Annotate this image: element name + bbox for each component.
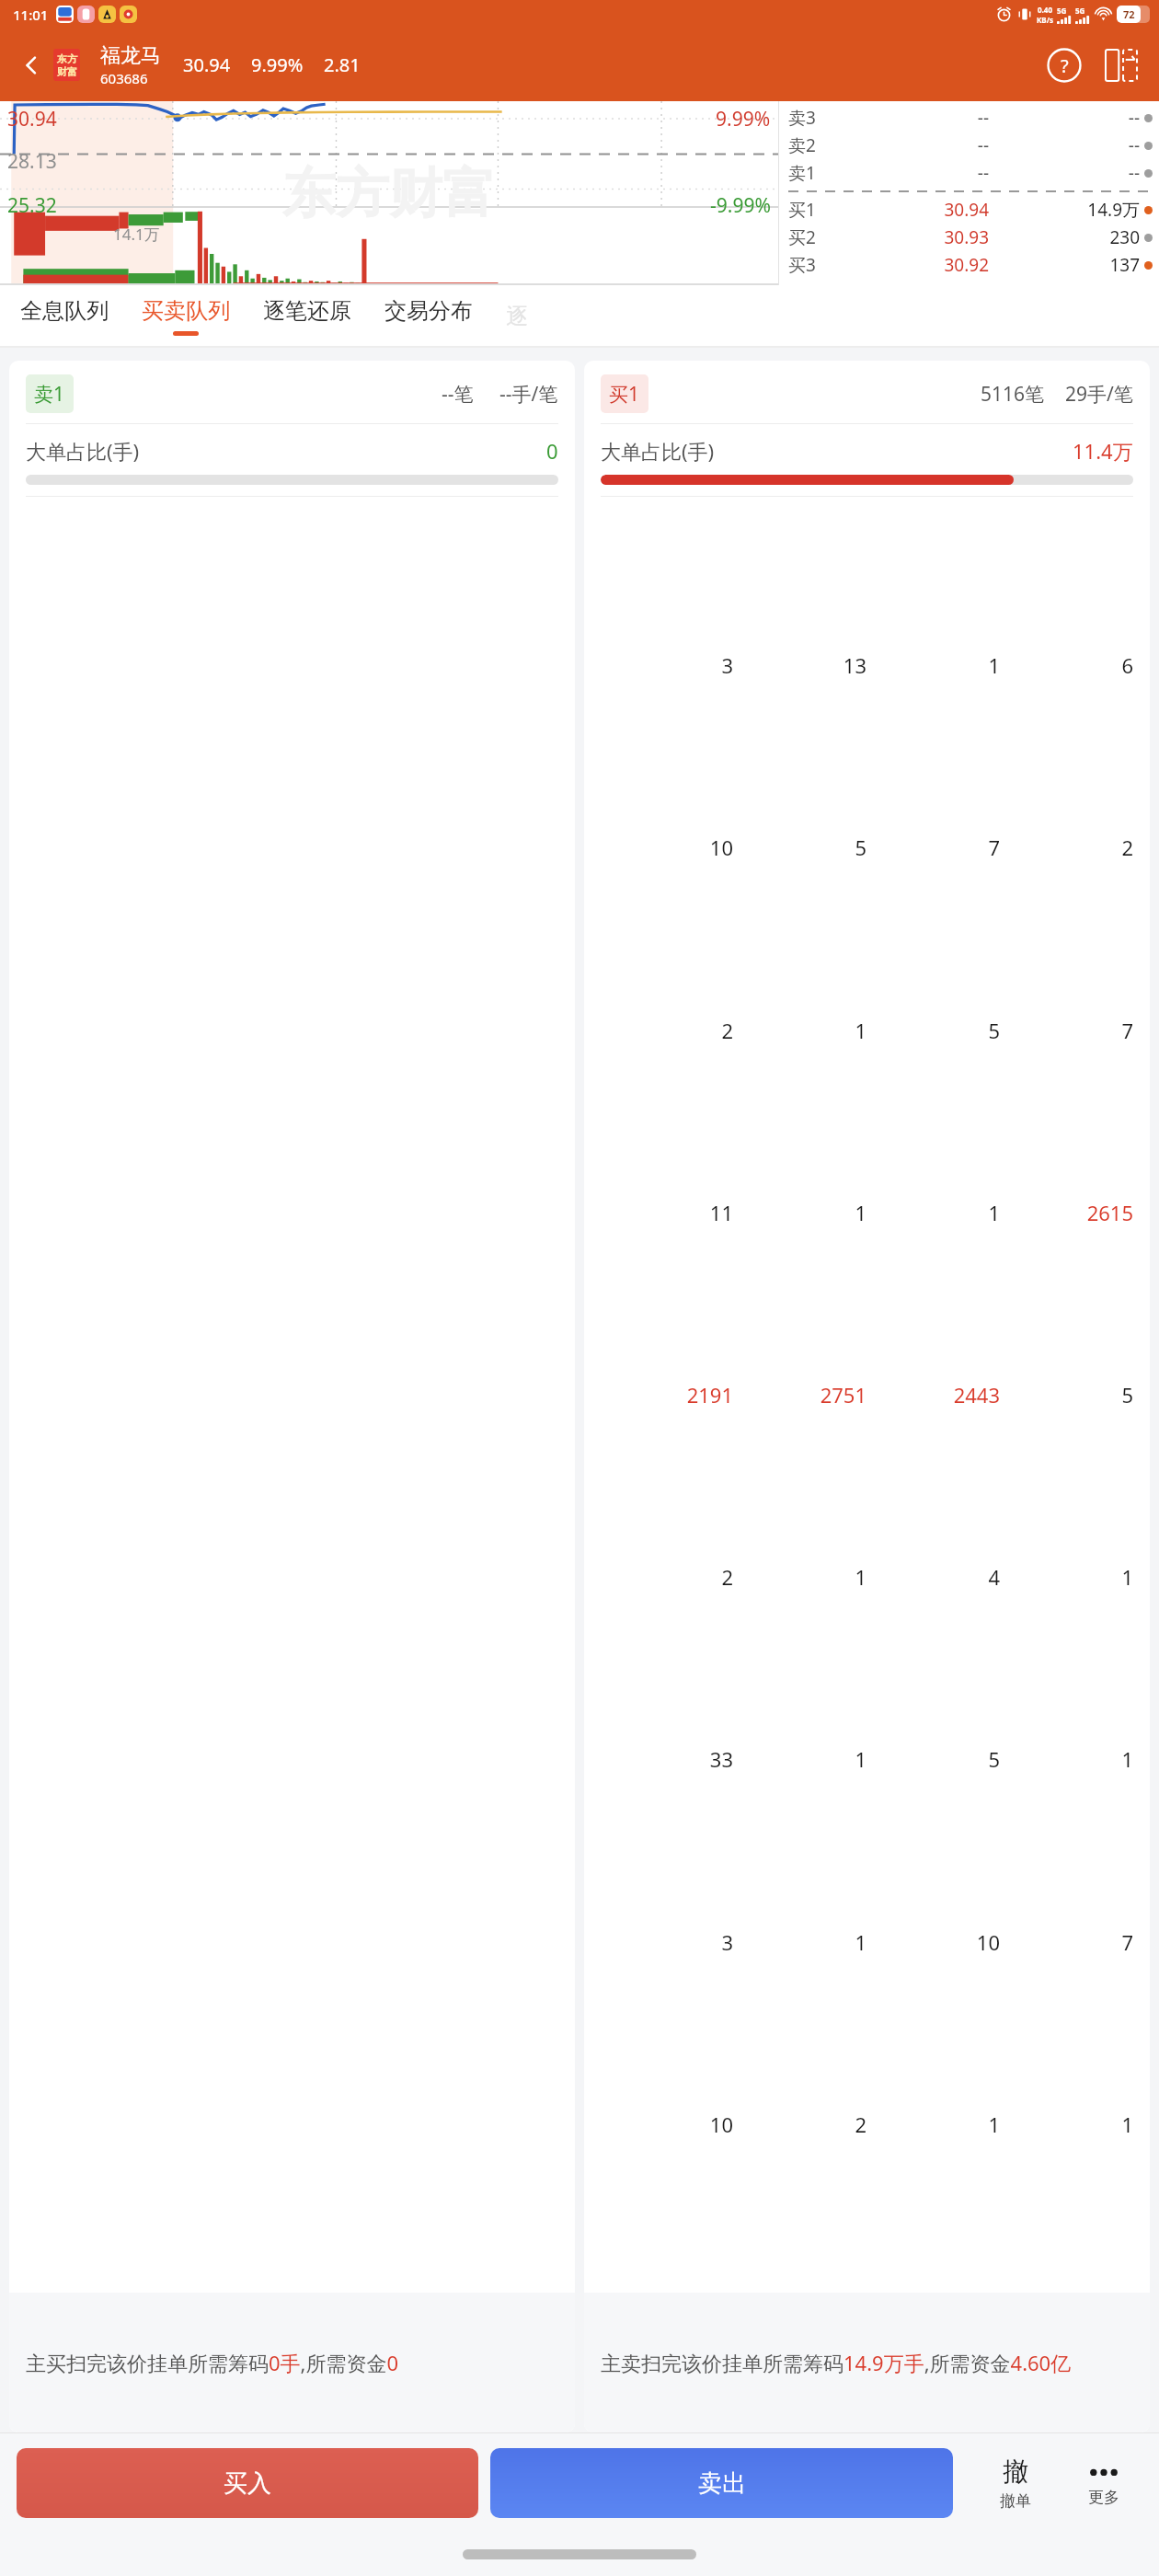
- staticText: KB/s: [1037, 15, 1053, 25]
- button[interactable]: 全息队列: [20, 292, 109, 341]
- staticText: 9.99%: [251, 52, 304, 77]
- button[interactable]: 卖出: [490, 2448, 953, 2518]
- staticText: 3: [601, 1928, 733, 1956]
- staticText: 10: [866, 1928, 1000, 1956]
- button[interactable]: 卖3: [788, 104, 1153, 132]
- staticText: 137: [996, 253, 1140, 277]
- staticText: 大单占比(手): [26, 437, 140, 465]
- staticText: 11.4万: [1073, 437, 1133, 465]
- staticText: 5G: [1057, 6, 1067, 16]
- staticText: 11: [601, 1199, 733, 1226]
- staticText: 5: [866, 1017, 1000, 1044]
- staticText: 买1: [609, 381, 640, 408]
- staticText: 逐笔还原: [263, 297, 351, 325]
- staticText: 5: [733, 834, 866, 861]
- staticText: --: [845, 161, 989, 185]
- staticText: 28.13: [7, 148, 57, 175]
- button[interactable]: 买卖队列: [142, 292, 230, 341]
- button[interactable]: 逐笔还原: [263, 292, 351, 341]
- staticText: 29手/笔: [1065, 381, 1133, 408]
- staticText: 1: [866, 1199, 1000, 1226]
- staticText: 5: [866, 1745, 1000, 1773]
- staticText: 30.94: [183, 52, 231, 77]
- staticText: 买3: [788, 253, 845, 277]
- staticText: 1: [866, 651, 1000, 679]
- staticText: 2751: [733, 1381, 866, 1409]
- staticText: 逐: [506, 303, 528, 330]
- staticText: 2.81: [324, 52, 361, 77]
- staticText: 30.94: [845, 198, 989, 222]
- staticText: 5: [1000, 1381, 1133, 1409]
- staticText: 卖出: [698, 2468, 746, 2499]
- staticText: 10: [601, 834, 733, 861]
- staticText: 财富: [57, 65, 77, 78]
- button[interactable]: 买1: [788, 196, 1153, 224]
- staticText: 撤: [1003, 2455, 1028, 2488]
- staticText: --笔: [442, 381, 474, 408]
- staticText: --: [845, 106, 989, 130]
- staticText: 1: [733, 1199, 866, 1226]
- staticText: 25.32: [7, 192, 57, 219]
- button[interactable]: Help: [1043, 44, 1085, 86]
- staticText: 0: [546, 437, 558, 465]
- staticText: 1: [1000, 2110, 1133, 2138]
- button[interactable]: 交易分布: [384, 292, 473, 341]
- staticText: 买卖队列: [142, 297, 230, 325]
- staticText: 6: [1000, 651, 1133, 679]
- button[interactable]: 买3: [788, 251, 1153, 279]
- staticText: --: [996, 133, 1140, 157]
- button[interactable]: Back: [11, 45, 52, 86]
- staticText: 东方财富: [282, 160, 496, 227]
- staticText: 卖2: [788, 133, 845, 157]
- staticText: 5G: [1075, 6, 1085, 16]
- staticText: 1: [866, 2110, 1000, 2138]
- button[interactable]: 买1: [584, 361, 1150, 2432]
- staticText: 30.93: [845, 225, 989, 249]
- staticText: 33: [601, 1745, 733, 1773]
- staticText: 主买扫完该价挂单所需筹码0手,所需资金0: [26, 2349, 399, 2376]
- staticText: 0.40: [1038, 5, 1052, 15]
- staticText: 72: [1123, 7, 1135, 21]
- staticText: 5116笔: [981, 381, 1045, 408]
- staticText: 3: [601, 651, 733, 679]
- staticText: 2615: [1000, 1199, 1133, 1226]
- staticText: --: [996, 161, 1140, 185]
- button[interactable]: 卖1: [9, 361, 575, 2432]
- button[interactable]: 卖2: [788, 132, 1153, 159]
- staticText: 1: [733, 1745, 866, 1773]
- staticText: 1: [733, 1017, 866, 1044]
- staticText: 2: [733, 2110, 866, 2138]
- staticText: 7: [866, 834, 1000, 861]
- staticText: 10: [601, 2110, 733, 2138]
- staticText: 30.92: [845, 253, 989, 277]
- staticText: 主卖扫完该价挂单所需筹码14.9万手,所需资金4.60亿: [601, 2349, 1072, 2376]
- staticText: 7: [1000, 1928, 1133, 1956]
- staticText: 东方: [57, 52, 77, 65]
- staticText: 2443: [866, 1381, 1000, 1409]
- button[interactable]: More: [1060, 2458, 1148, 2507]
- staticText: -9.99%: [710, 192, 771, 219]
- button[interactable]: 撤: [971, 2455, 1060, 2511]
- button[interactable]: 买入: [17, 2448, 478, 2518]
- staticText: 买2: [788, 225, 845, 249]
- staticText: 交易分布: [384, 297, 473, 325]
- staticText: 1: [733, 1928, 866, 1956]
- staticText: 30.94: [7, 106, 57, 132]
- staticText: 603686: [100, 69, 148, 87]
- staticText: 1: [1000, 1745, 1133, 1773]
- staticText: 2: [1000, 834, 1133, 861]
- button[interactable]: 卖1: [788, 159, 1153, 187]
- staticText: 230: [996, 225, 1140, 249]
- staticText: 1: [733, 1563, 866, 1591]
- staticText: 大单占比(手): [601, 437, 715, 465]
- button[interactable]: Switch layout: [1100, 44, 1142, 86]
- button[interactable]: 买2: [788, 224, 1153, 251]
- staticText: 卖3: [788, 106, 845, 130]
- staticText: 2191: [601, 1381, 733, 1409]
- staticText: 买入: [224, 2468, 271, 2499]
- staticText: --手/笔: [499, 381, 558, 408]
- staticText: 14.9万: [996, 198, 1140, 222]
- staticText: --: [845, 133, 989, 157]
- staticText: 撤单: [1000, 2491, 1031, 2511]
- staticText: 13: [733, 651, 866, 679]
